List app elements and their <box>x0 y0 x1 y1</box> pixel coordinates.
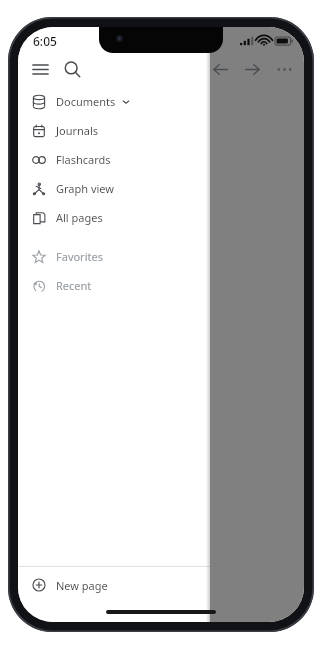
button[interactable]: Flashcards <box>18 145 210 174</box>
button[interactable]: Menu <box>24 53 56 85</box>
button[interactable]: Back <box>204 53 236 85</box>
button[interactable]: Recent <box>18 271 210 300</box>
staticText: n today. I <box>208 597 261 613</box>
staticText: All pages <box>56 210 103 225</box>
staticText: Documents <box>56 94 116 109</box>
button[interactable]: Favorites <box>18 242 210 271</box>
staticText: New page <box>56 578 108 593</box>
button[interactable]: More options <box>268 53 300 85</box>
staticText: 6:05 <box>33 33 57 49</box>
button[interactable]: Forward <box>236 53 268 85</box>
button[interactable]: Journals <box>18 116 210 145</box>
button[interactable]: Search <box>56 53 88 85</box>
staticText: Journals <box>56 123 99 138</box>
staticText: Flashcards <box>56 152 111 167</box>
staticText: Graph view <box>56 181 114 196</box>
button[interactable]: New page <box>18 567 210 603</box>
staticText: up earlier <box>208 614 263 622</box>
button[interactable]: Documents <box>18 87 210 116</box>
button[interactable]: All pages <box>18 203 210 232</box>
button[interactable]: Graph view <box>18 174 210 203</box>
staticText: Recent <box>56 278 92 293</box>
staticText: Favorites <box>56 249 103 264</box>
